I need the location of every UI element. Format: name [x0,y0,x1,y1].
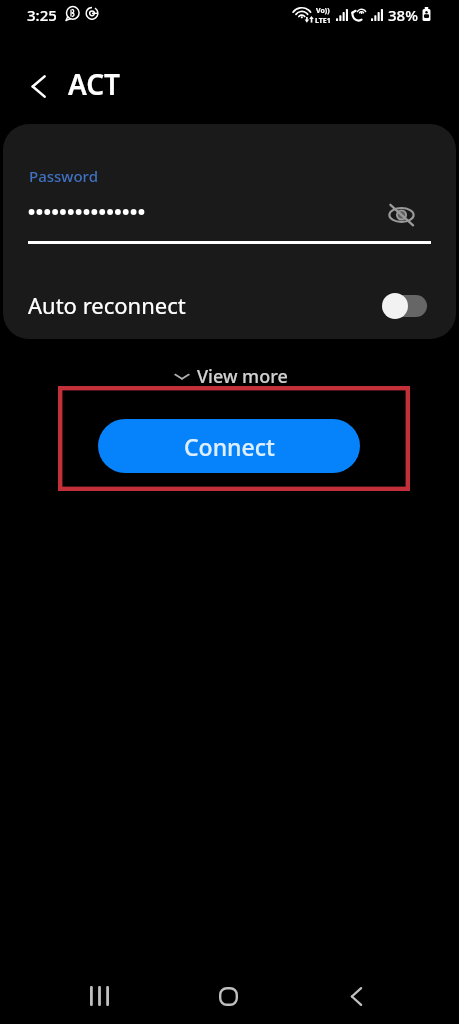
staticText: Password [29,166,98,186]
button[interactable]: Recent apps [74,971,124,1021]
staticText: 3:25 [27,5,57,25]
button[interactable]: Auto reconnect toggle, off [382,292,427,319]
staticText: LTE1 [315,16,331,26]
staticText: ACT [68,65,121,103]
staticText: Auto reconnect [28,290,186,320]
button[interactable]: Back [331,971,381,1021]
staticText: Vo)) [316,6,330,16]
staticText: 38% [388,5,418,25]
button[interactable]: Home [203,971,253,1021]
button[interactable]: Auto reconnect [3,279,456,331]
button[interactable]: Show password [384,197,418,231]
staticText: Connect [184,431,275,462]
button[interactable]: Connect [98,419,360,473]
button[interactable]: View more [173,363,288,389]
staticText: View more [197,364,288,389]
button[interactable]: Back [20,68,56,104]
